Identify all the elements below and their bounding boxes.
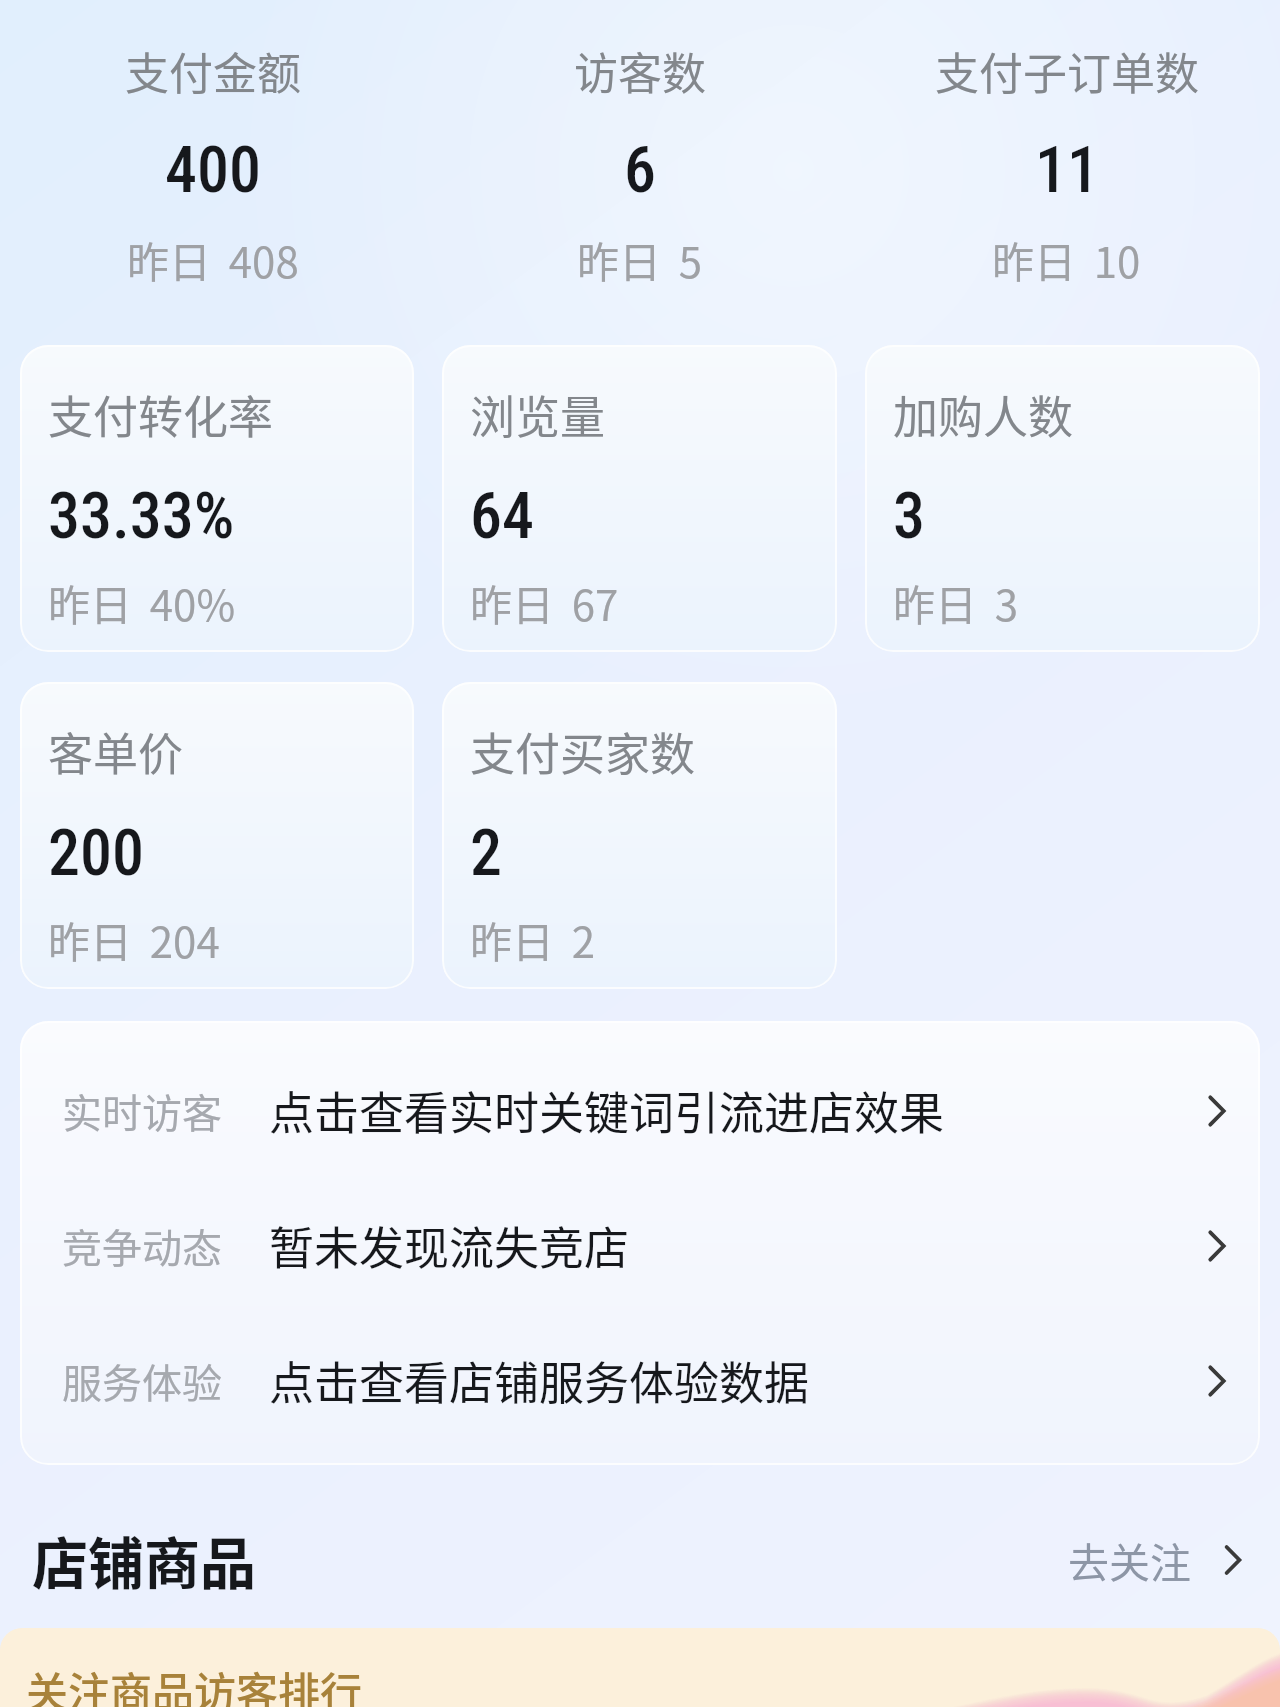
- button[interactable]: 加购人数: [865, 345, 1260, 652]
- staticText: 昨日 3: [893, 572, 1019, 633]
- staticText: 支付买家数: [470, 719, 696, 784]
- staticText: 关注商品访客排行: [26, 1659, 363, 1707]
- staticText: 竞争动态: [62, 1217, 222, 1275]
- staticText: 64: [470, 479, 534, 554]
- button[interactable]: 支付转化率: [20, 345, 414, 652]
- staticText: 昨日 5: [577, 229, 703, 290]
- staticText: 支付子订单数: [935, 39, 1199, 103]
- staticText: 支付金额: [125, 39, 301, 103]
- other: 实时访客: [1196, 1090, 1238, 1132]
- staticText: 访客数: [574, 39, 706, 103]
- staticText: 6: [624, 133, 656, 208]
- staticText: 3: [893, 479, 925, 554]
- staticText: 点击查看实时关键词引流进店效果: [269, 1078, 945, 1143]
- button[interactable]: 支付子订单数: [853, 39, 1280, 290]
- staticText: 昨日 2: [470, 909, 596, 970]
- button[interactable]: 关注商品访客排行: [0, 1628, 1280, 1707]
- staticText: 昨日 67: [470, 572, 619, 633]
- staticText: 昨日 204: [48, 909, 220, 970]
- staticText: 11: [1035, 133, 1099, 208]
- button[interactable]: 访客数: [426, 39, 853, 290]
- staticText: 支付转化率: [48, 382, 274, 447]
- button[interactable]: 去关注: [1068, 1530, 1253, 1589]
- staticText: 200: [48, 816, 144, 891]
- button[interactable]: 客单价: [20, 682, 414, 989]
- staticText: 服务体验: [62, 1352, 222, 1410]
- button[interactable]: 支付金额: [0, 39, 426, 290]
- button[interactable]: 服务体验: [20, 1313, 1260, 1448]
- staticText: 实时访客: [62, 1082, 222, 1140]
- staticText: 客单价: [48, 719, 184, 784]
- other: 竞争动态: [1196, 1225, 1238, 1267]
- button[interactable]: 竞争动态: [20, 1178, 1260, 1313]
- other: 去关注: [1213, 1540, 1253, 1580]
- staticText: 2: [470, 816, 502, 891]
- other: 服务体验: [1196, 1360, 1238, 1402]
- staticText: 33.33%: [48, 479, 235, 554]
- staticText: 昨日 10: [992, 229, 1141, 290]
- button[interactable]: 支付买家数: [442, 682, 837, 989]
- staticText: 去关注: [1068, 1530, 1191, 1589]
- button[interactable]: 实时访客: [20, 1043, 1260, 1178]
- staticText: 400: [165, 133, 261, 208]
- staticText: 浏览量: [470, 382, 606, 447]
- button[interactable]: 浏览量: [442, 345, 837, 652]
- staticText: 点击查看店铺服务体验数据: [269, 1348, 810, 1413]
- staticText: 昨日 408: [127, 229, 299, 290]
- staticText: 昨日 40%: [48, 572, 236, 633]
- staticText: 加购人数: [893, 382, 1074, 447]
- staticText: 暂未发现流失竞店: [269, 1213, 630, 1278]
- staticText: 店铺商品: [32, 1519, 256, 1600]
